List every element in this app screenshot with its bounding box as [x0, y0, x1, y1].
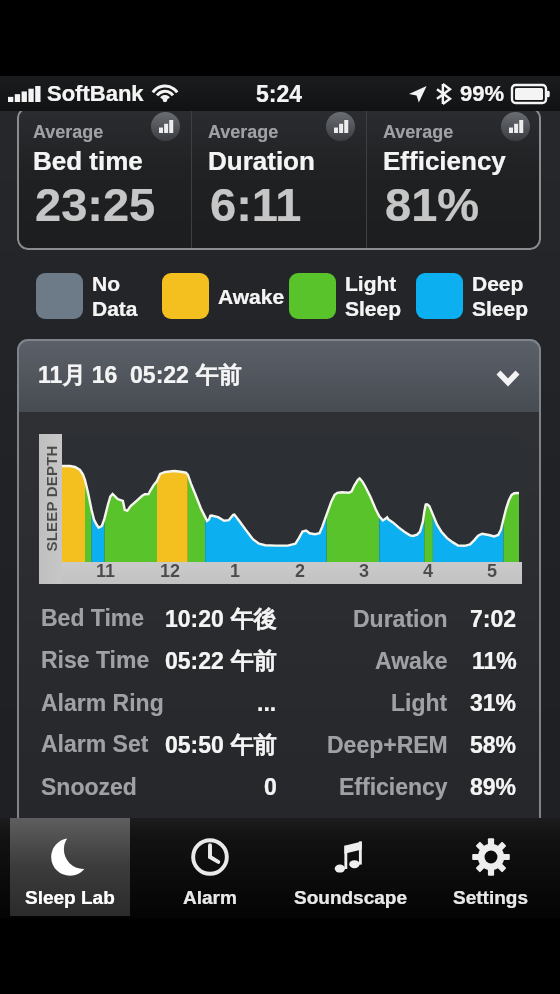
staticText: Efficiency — [383, 146, 506, 175]
button[interactable]: Average — [367, 107, 541, 250]
staticText: 3 — [359, 561, 370, 581]
staticText: 12 — [160, 561, 181, 581]
button[interactable]: Rise Time — [41, 640, 517, 682]
other: Sleep Lab — [48, 837, 92, 877]
button[interactable]: Show chart — [501, 112, 530, 141]
staticText: Light Sleep — [345, 272, 402, 320]
staticText: Rise Time — [41, 647, 150, 673]
staticText: Alarm Set — [41, 731, 149, 757]
staticText: 11月 16 05:22 午前 — [38, 361, 242, 390]
staticText: Duration — [353, 606, 448, 632]
staticText: 58% — [470, 732, 517, 758]
button[interactable]: Alarm Ring — [41, 682, 517, 724]
staticText: 0 — [264, 774, 277, 800]
staticText: 11 — [96, 561, 116, 581]
staticText: Average — [208, 122, 279, 142]
other: Settings — [469, 837, 513, 877]
staticText: 23:25 — [35, 178, 156, 231]
staticText: 05:22 午前 — [165, 647, 277, 676]
staticText: Average — [383, 122, 454, 142]
button[interactable]: Alarm — [150, 818, 270, 916]
staticText: 89% — [470, 774, 517, 800]
button[interactable]: Bed Time — [41, 598, 517, 640]
staticText: Awake — [218, 285, 285, 308]
staticText: Bed Time — [41, 605, 145, 631]
staticText: SLEEP DEPTH — [42, 444, 59, 551]
staticText: 7:02 — [470, 606, 517, 632]
staticText: Snoozed — [41, 774, 137, 800]
staticText: Alarm — [183, 887, 237, 908]
staticText: Settings — [453, 887, 528, 908]
staticText: Deep Sleep — [472, 272, 529, 320]
staticText: 4 — [423, 561, 434, 581]
staticText: 1 — [230, 561, 241, 581]
button[interactable]: 11月 16 05:22 午前 — [17, 339, 541, 412]
staticText: Awake — [375, 648, 448, 674]
staticText: Sleep Lab — [25, 887, 115, 908]
staticText: 99% — [460, 81, 505, 106]
other: Alarm — [188, 837, 232, 877]
button[interactable]: Soundscape — [290, 818, 410, 916]
staticText: Efficiency — [339, 774, 448, 800]
other: Expand — [496, 370, 520, 385]
staticText: Soundscape — [294, 887, 407, 908]
staticText: ... — [257, 690, 277, 716]
staticText: 2 — [295, 561, 306, 581]
staticText: Duration — [208, 146, 315, 175]
button[interactable]: Alarm Set — [41, 724, 517, 766]
staticText: Light — [391, 690, 448, 716]
staticText: 31% — [470, 690, 517, 716]
staticText: 10:20 午後 — [165, 605, 277, 634]
staticText: Deep+REM — [327, 732, 448, 758]
button[interactable]: Average — [17, 107, 191, 250]
staticText: Bed time — [33, 146, 143, 175]
staticText: 81% — [385, 178, 480, 231]
button[interactable]: Average — [192, 107, 366, 250]
button[interactable]: Snoozed — [41, 766, 517, 808]
staticText: Alarm Ring — [41, 690, 164, 716]
button[interactable]: Settings — [430, 818, 550, 916]
button[interactable]: Show chart — [326, 112, 355, 141]
staticText: 5 — [487, 561, 498, 581]
staticText: 6:11 — [210, 178, 302, 231]
staticText: Average — [33, 122, 104, 142]
button[interactable]: Show chart — [151, 112, 180, 141]
staticText: 5:24 — [256, 81, 303, 107]
other: Soundscape — [329, 837, 373, 877]
button[interactable]: Sleep Lab — [10, 818, 130, 916]
staticText: 11% — [472, 648, 517, 674]
staticText: 05:50 午前 — [165, 731, 277, 760]
staticText: SoftBank — [47, 81, 144, 106]
staticText: No Data — [92, 272, 138, 320]
